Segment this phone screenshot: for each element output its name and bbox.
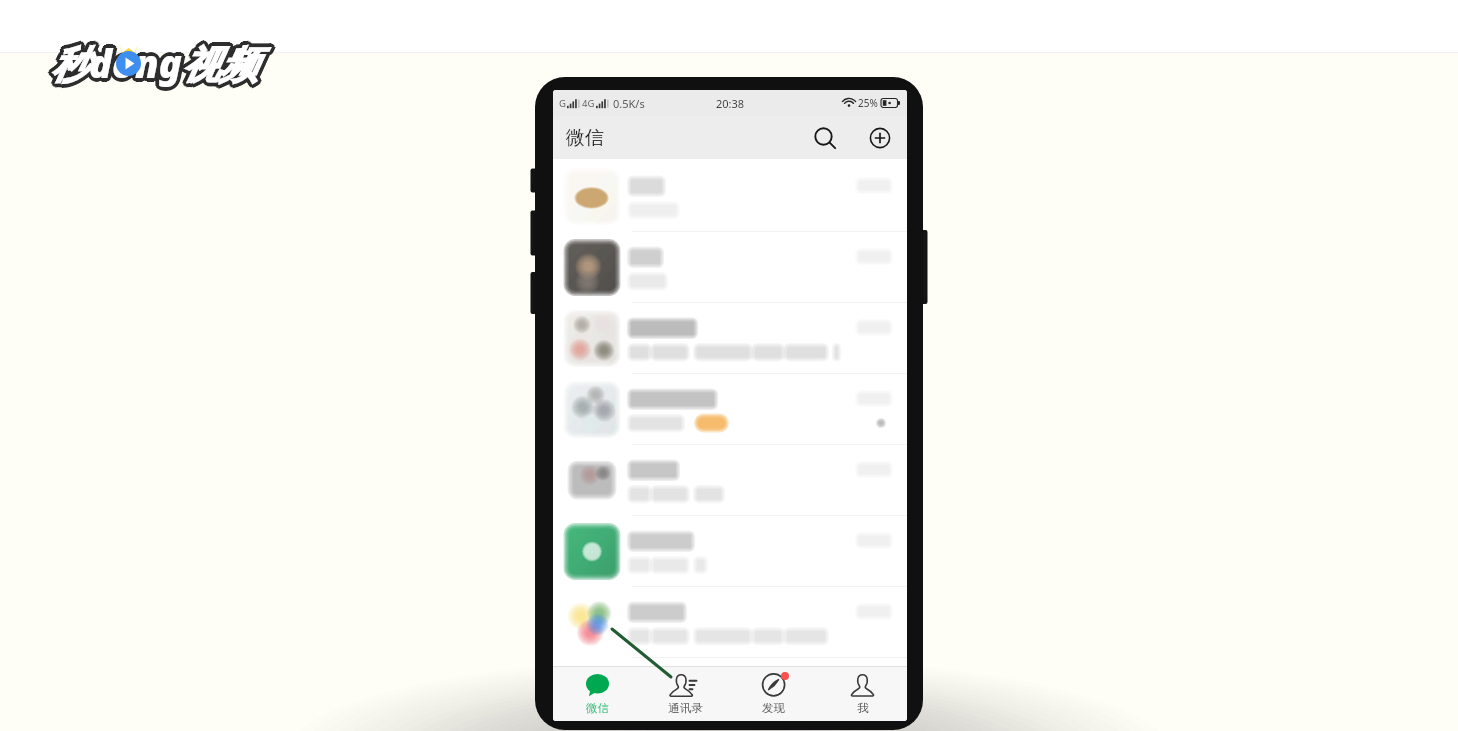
staticText: 秒dong视频 xyxy=(53,39,260,91)
staticText: 秒dong视频 xyxy=(53,40,260,92)
button[interactable] xyxy=(553,445,907,516)
staticText: 秒dong视频 xyxy=(51,38,258,90)
staticText: 秒dong视频 xyxy=(49,39,256,91)
staticText: 秒dong视频 xyxy=(50,36,257,88)
staticText: 秒dong视频 xyxy=(55,37,262,89)
staticText: 秒dong视频 xyxy=(52,39,259,91)
staticText: 秒dong视频 xyxy=(51,41,258,93)
staticText: 秒dong视频 xyxy=(48,37,255,89)
staticText: 通讯录 xyxy=(668,701,703,715)
staticText: 秒dong视频 xyxy=(52,40,259,92)
staticText: 秒dong视频 xyxy=(53,36,260,88)
staticText: 秒dong视频 xyxy=(50,37,257,89)
staticText: 秒dong视频 xyxy=(53,37,260,89)
button[interactable] xyxy=(553,374,907,445)
staticText: 秒dong视频 xyxy=(51,35,258,87)
button[interactable]: 通讯录 xyxy=(641,667,729,721)
staticText: 秒dong视频 xyxy=(48,36,255,88)
button[interactable] xyxy=(553,303,907,374)
button[interactable] xyxy=(553,516,907,587)
button[interactable]: Add xyxy=(864,122,896,154)
staticText: 秒dong视频 xyxy=(54,36,261,88)
staticText: 秒dong视频 xyxy=(50,40,257,92)
staticText: 秒dong视频 xyxy=(50,38,257,90)
staticText: 秒dong视频 xyxy=(49,35,256,87)
staticText: 微信 xyxy=(566,126,604,150)
staticText: 秒dong视频 xyxy=(54,35,261,87)
staticText: 秒dong视频 xyxy=(50,35,257,87)
button[interactable] xyxy=(553,587,907,658)
staticText: 秒dong视频 xyxy=(51,37,258,89)
staticText: 秒dong视频 xyxy=(54,37,261,89)
button[interactable] xyxy=(553,232,907,303)
staticText: 0.5K/s xyxy=(613,96,645,111)
button[interactable] xyxy=(553,161,907,232)
staticText: 秒dong视频 xyxy=(49,40,256,92)
staticText: 秒dong视频 xyxy=(50,39,257,91)
staticText: 秒dong视频 xyxy=(52,37,259,89)
staticText: 秒dong视频 xyxy=(51,40,258,92)
staticText: 25% xyxy=(858,96,878,110)
staticText: 秒dong视频 xyxy=(52,34,259,86)
staticText: 秒dong视频 xyxy=(47,37,254,89)
staticText: 秒dong视频 xyxy=(52,38,259,90)
staticText: 秒dong视频 xyxy=(52,35,259,87)
staticText: 秒dong视频 xyxy=(51,33,258,85)
button[interactable]: 发现 xyxy=(729,667,818,721)
staticText: 秒dong视频 xyxy=(49,38,256,90)
staticText: 秒dong视频 xyxy=(54,39,261,91)
staticText: 发现 xyxy=(762,701,785,715)
staticText: 秒dong视频 xyxy=(53,35,260,87)
staticText: 秒dong视频 xyxy=(51,37,258,89)
staticText: 秒dong视频 xyxy=(49,37,256,89)
staticText: 秒dong视频 xyxy=(53,34,260,86)
staticText: 20:38 xyxy=(716,96,745,111)
staticText: 我 xyxy=(857,701,869,715)
staticText: 秒dong视频 xyxy=(48,35,255,87)
staticText: 秒dong视频 xyxy=(52,36,259,88)
staticText: G xyxy=(559,97,566,110)
staticText: 秒dong视频 xyxy=(50,34,257,86)
staticText: 秒dong视频 xyxy=(51,34,258,86)
staticText: 秒dong视频 xyxy=(49,36,256,88)
button[interactable]: 微信 xyxy=(553,667,641,721)
staticText: 秒dong视频 xyxy=(48,39,255,91)
staticText: 秒dong视频 xyxy=(51,36,258,88)
button[interactable]: 我 xyxy=(818,667,907,721)
button[interactable]: Search xyxy=(809,122,841,154)
staticText: 秒dong视频 xyxy=(48,38,255,90)
staticText: 4G xyxy=(582,97,595,110)
staticText: 秒dong视频 xyxy=(49,34,256,86)
staticText: 秒dong视频 xyxy=(51,39,258,91)
staticText: 秒dong视频 xyxy=(54,38,261,90)
staticText: 秒dong视频 xyxy=(53,38,260,90)
staticText: 微信 xyxy=(586,701,609,715)
